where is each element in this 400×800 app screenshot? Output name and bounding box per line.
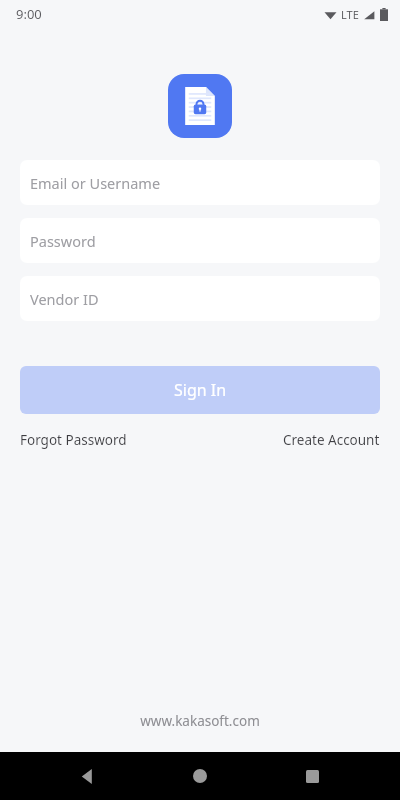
button[interactable]: Create Account	[283, 431, 380, 449]
staticText: Password	[30, 231, 96, 251]
button[interactable]: Email or Username	[20, 160, 380, 205]
staticText: Email or Username	[30, 173, 161, 193]
button[interactable]: Password	[20, 218, 380, 263]
button[interactable]: Home	[176, 752, 224, 800]
button[interactable]: Forgot Password	[20, 431, 127, 449]
button[interactable]: Back	[64, 752, 112, 800]
staticText: LTE	[341, 7, 359, 22]
staticText: Create Account	[283, 431, 380, 449]
button[interactable]: Recent apps	[288, 752, 336, 800]
button[interactable]: Sign In	[20, 366, 380, 414]
other: App logo	[168, 74, 232, 138]
staticText: 9:00	[16, 5, 42, 23]
staticText: Sign In	[174, 379, 227, 401]
staticText: Vendor ID	[30, 289, 99, 309]
staticText: Forgot Password	[20, 431, 127, 449]
button[interactable]: Vendor ID	[20, 276, 380, 321]
staticText: www.kakasoft.com	[0, 712, 400, 730]
